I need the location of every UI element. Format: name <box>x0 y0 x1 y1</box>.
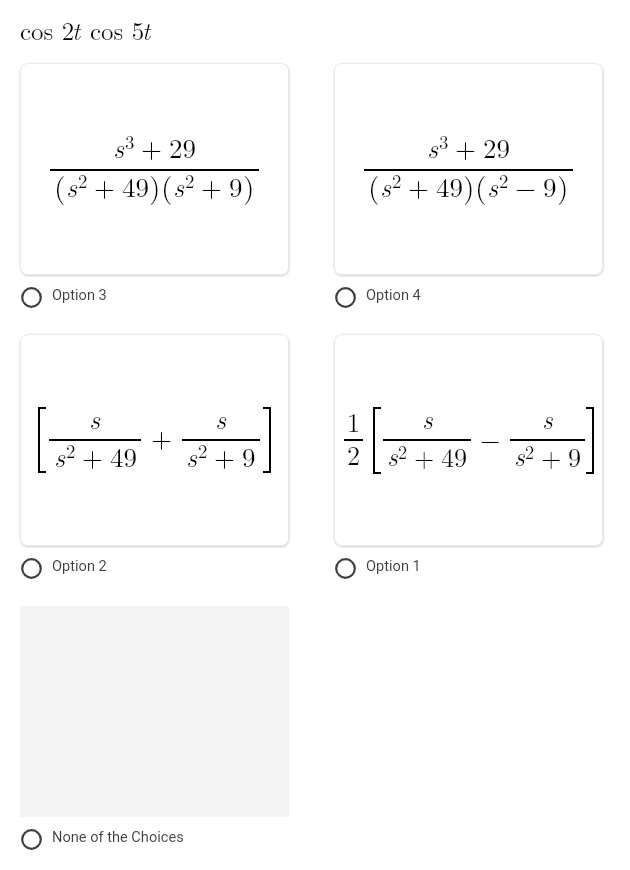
staticText: ( <box>475 165 487 207</box>
staticText: 2 <box>185 167 195 194</box>
staticText: 2 <box>499 167 509 194</box>
staticText: s <box>387 437 398 474</box>
staticText: ) <box>557 165 569 207</box>
staticText: s <box>66 167 78 205</box>
staticText: 49 <box>122 167 149 205</box>
staticText: s <box>54 437 66 475</box>
staticText: Option 1 <box>366 557 421 574</box>
staticText: Option 3 <box>52 286 107 303</box>
staticText: − <box>515 167 537 205</box>
staticText: s <box>380 167 392 205</box>
staticText: s <box>422 400 433 437</box>
button[interactable]: None of the Choices <box>20 817 184 861</box>
staticText: + <box>455 128 477 166</box>
staticText: 9 <box>543 167 557 205</box>
staticText: ( <box>161 165 173 207</box>
button[interactable]: s <box>20 63 289 275</box>
staticText: 49 <box>110 437 137 475</box>
staticText: s <box>487 167 499 205</box>
staticText: 49 <box>436 167 463 205</box>
button[interactable]: s <box>334 63 603 275</box>
staticText: 2 <box>78 167 88 194</box>
staticText: s <box>186 437 198 475</box>
button[interactable]: Option 2 <box>20 546 107 590</box>
staticText: + <box>214 437 236 475</box>
staticText: 1 <box>347 402 361 439</box>
staticText: 3 <box>125 128 135 155</box>
staticText: 2 <box>525 438 535 464</box>
staticText: cos 2 <box>20 12 75 47</box>
staticText: + <box>414 437 435 474</box>
staticText: + <box>151 418 173 456</box>
staticText: s <box>514 437 525 474</box>
staticText: ( <box>368 165 380 207</box>
staticText: + <box>201 167 223 205</box>
staticText: ) <box>243 165 255 207</box>
staticText: + <box>541 437 562 474</box>
staticText: + <box>408 167 430 205</box>
staticText: + <box>94 167 116 205</box>
staticText: 29 <box>169 128 196 166</box>
staticText: Option 2 <box>52 557 107 574</box>
button[interactable]: s <box>20 334 289 546</box>
staticText: 49 <box>441 437 468 474</box>
staticText: + <box>141 128 163 166</box>
staticText: 9 <box>229 167 243 205</box>
staticText: s <box>89 399 101 437</box>
staticText: s <box>173 167 185 205</box>
staticText: t <box>142 12 151 47</box>
staticText: t <box>72 12 81 47</box>
staticText: 3 <box>439 128 449 155</box>
staticText: + <box>82 437 104 475</box>
staticText: s <box>113 128 125 166</box>
staticText: None of the Choices <box>52 828 184 845</box>
staticText: s <box>215 399 227 437</box>
staticText: 2 <box>347 435 361 472</box>
staticText: ) <box>463 165 475 207</box>
staticText: 2 <box>66 437 76 464</box>
button[interactable]: Option 3 <box>20 275 107 319</box>
staticText: − <box>480 419 501 456</box>
staticText: ( <box>54 165 66 207</box>
staticText: ) <box>149 165 161 207</box>
staticText: 2 <box>398 438 408 464</box>
button[interactable]: Option 4 <box>334 275 421 319</box>
staticText: 9 <box>568 437 582 474</box>
button[interactable]: 1 <box>334 334 603 546</box>
staticText: 2 <box>392 167 402 194</box>
staticText: 2 <box>198 437 208 464</box>
staticText: s <box>427 128 439 166</box>
staticText: Option 4 <box>366 286 421 303</box>
staticText: s <box>542 400 553 437</box>
staticText: 9 <box>242 437 256 475</box>
staticText: 29 <box>483 128 510 166</box>
button[interactable]: Option 1 <box>334 546 421 590</box>
staticText: cos 5 <box>90 12 145 47</box>
